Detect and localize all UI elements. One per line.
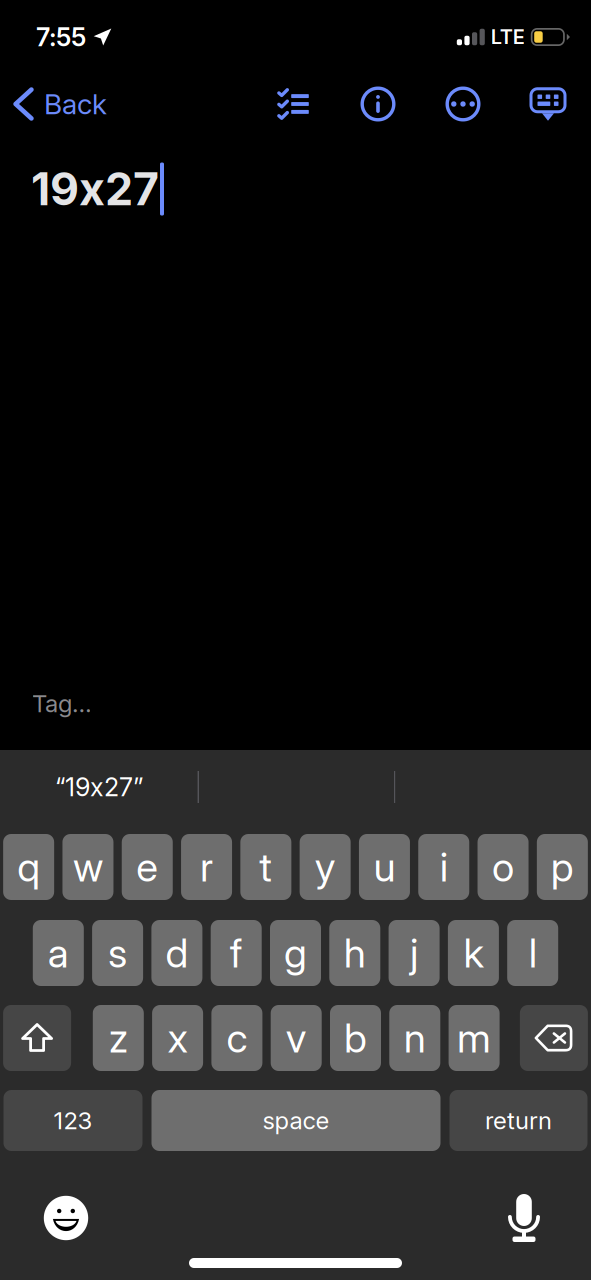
button[interactable]: e (122, 834, 173, 900)
button[interactable]: Back (0, 74, 120, 134)
staticText: Tag… (32, 689, 92, 718)
button[interactable]: b (330, 1005, 381, 1071)
button[interactable]: v (271, 1005, 322, 1071)
staticText: i (440, 843, 448, 891)
button[interactable]: More (433, 74, 493, 134)
button[interactable]: g (270, 920, 321, 986)
button[interactable]: k (448, 920, 499, 986)
staticText: c (226, 1014, 247, 1062)
staticText: s (108, 929, 127, 977)
staticText: x (168, 1014, 188, 1062)
button[interactable]: d (151, 920, 202, 986)
staticText: m (457, 1014, 491, 1062)
button[interactable]: 123 (3, 1090, 142, 1151)
button[interactable]: Dictate (492, 1190, 556, 1246)
button[interactable]: x (152, 1005, 203, 1071)
button[interactable]: m (449, 1005, 500, 1071)
button[interactable]: f (211, 920, 262, 986)
staticText: Back (44, 87, 107, 121)
button[interactable]: Info (348, 74, 408, 134)
button[interactable]: r (181, 834, 232, 900)
staticText: z (109, 1014, 128, 1062)
button[interactable]: z (93, 1005, 144, 1071)
button[interactable]: p (537, 834, 588, 900)
staticText: l (529, 929, 537, 977)
staticText: p (551, 843, 574, 891)
staticText: n (404, 1014, 426, 1062)
button[interactable]: return (449, 1090, 587, 1151)
button[interactable]: w (62, 834, 113, 900)
button[interactable]: l (507, 920, 558, 986)
button[interactable]: t (240, 834, 291, 900)
staticText: j (410, 929, 418, 977)
staticText: e (136, 843, 158, 891)
staticText: return (485, 1106, 552, 1135)
staticText: u (373, 843, 395, 891)
staticText: v (286, 1014, 307, 1062)
staticText: “19x27” (55, 772, 143, 802)
button[interactable]: h (329, 920, 380, 986)
staticText: y (315, 843, 336, 891)
button[interactable]: o (478, 834, 529, 900)
button[interactable]: y (300, 834, 351, 900)
staticText: 123 (53, 1106, 92, 1135)
button[interactable]: Hide Keyboard (518, 74, 578, 134)
staticText: b (344, 1014, 367, 1062)
button[interactable]: a (33, 920, 84, 986)
button[interactable]: Emoji Keyboard (34, 1190, 98, 1246)
button[interactable]: Delete (520, 1005, 588, 1071)
button[interactable]: n (389, 1005, 440, 1071)
button[interactable]: c (211, 1005, 262, 1071)
button[interactable]: “19x27” (1, 750, 198, 824)
staticText: h (344, 929, 366, 977)
staticText: d (165, 929, 188, 977)
staticText: k (463, 929, 483, 977)
staticText: t (259, 843, 272, 891)
button[interactable]: q (3, 834, 54, 900)
staticText: w (73, 843, 103, 891)
button[interactable]: Checklist (263, 74, 323, 134)
staticText: LTE (491, 25, 525, 49)
staticText: space (262, 1106, 329, 1135)
button[interactable]: i (418, 834, 469, 900)
staticText: g (284, 929, 307, 977)
button[interactable]: s (92, 920, 143, 986)
staticText: r (200, 843, 213, 891)
staticText: q (17, 843, 40, 891)
staticText: f (230, 929, 243, 977)
button[interactable]: u (359, 834, 410, 900)
staticText: a (48, 929, 69, 977)
button[interactable]: j (389, 920, 440, 986)
staticText: o (492, 843, 514, 891)
staticText: 7:55 (36, 22, 86, 52)
staticText: 19x27 (31, 162, 159, 216)
button[interactable]: Shift (3, 1005, 71, 1071)
button[interactable]: space (151, 1090, 440, 1151)
